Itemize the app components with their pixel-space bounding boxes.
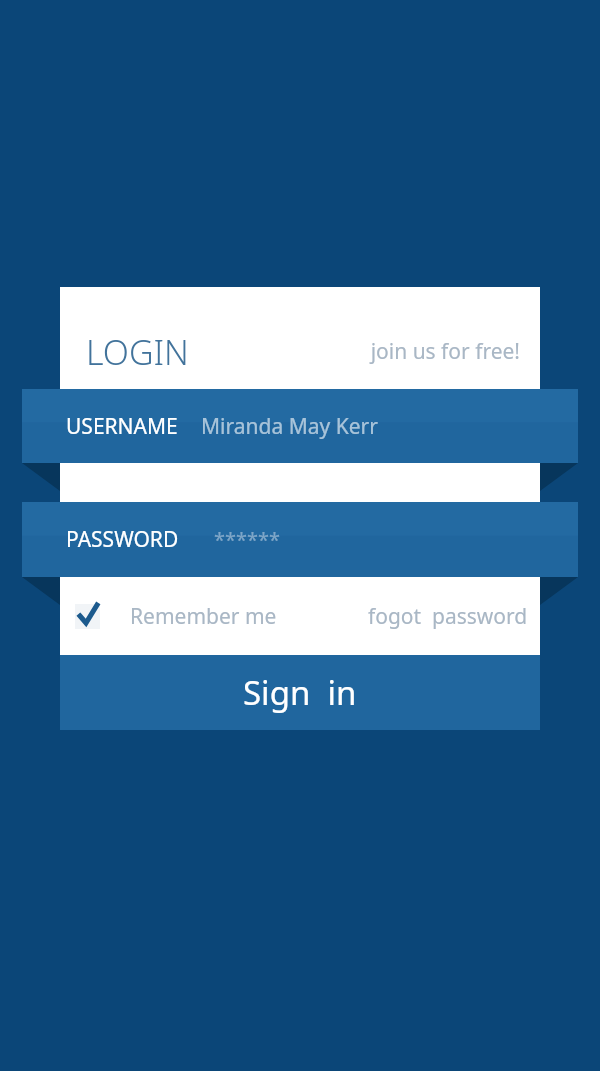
staticText: PASSWORD [66, 525, 179, 554]
staticText: USERNAME [66, 412, 178, 441]
button[interactable]: PASSWORD [22, 502, 578, 577]
button[interactable]: join us for free! [358, 337, 520, 366]
button[interactable]: LOGIN [86, 329, 189, 375]
staticText: fogot password [368, 602, 528, 631]
staticText: ****** [214, 526, 281, 553]
button[interactable]: Remember me checkbox [70, 596, 290, 636]
button[interactable]: Sign in [60, 655, 540, 730]
staticText: join us for free! [358, 337, 520, 366]
staticText: Remember me [130, 602, 277, 631]
staticText: LOGIN [86, 329, 189, 375]
button[interactable]: USERNAME [22, 389, 578, 463]
staticText: Sign in [243, 670, 357, 715]
button[interactable]: fogot password [350, 596, 528, 636]
staticText: Miranda May Kerr [201, 412, 378, 441]
